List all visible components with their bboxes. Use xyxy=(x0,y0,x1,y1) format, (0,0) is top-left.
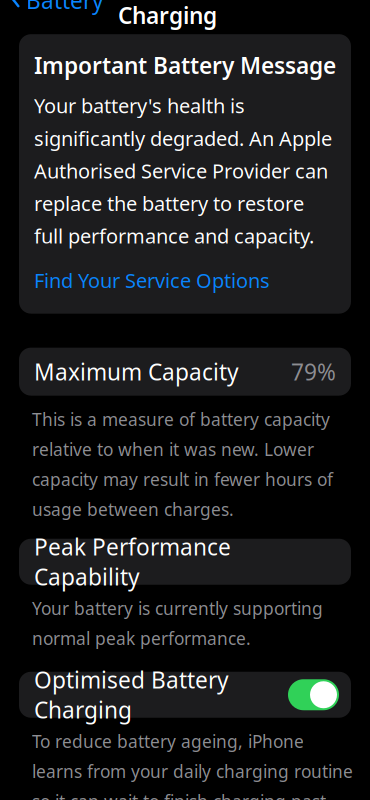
staticText: 79% xyxy=(291,357,336,387)
button[interactable]: Maximum Capacity xyxy=(0,348,351,396)
staticText: Your battery is currently supporting nor… xyxy=(32,597,323,650)
staticText: Important Battery Message xyxy=(34,50,336,80)
staticText: Find Your Service Options xyxy=(34,267,270,294)
button[interactable]: Battery xyxy=(0,0,110,20)
button[interactable]: Find Your Service Options xyxy=(34,249,270,296)
staticText: This is a measure of battery capacity re… xyxy=(32,408,333,521)
staticText: Your battery's health is significantly d… xyxy=(34,92,332,249)
button[interactable]: Peak Performance Capability xyxy=(0,539,351,585)
button[interactable]: Optimised Battery Charging xyxy=(0,672,351,718)
staticText: Optimised Battery Charging xyxy=(34,665,229,725)
staticText: Battery xyxy=(26,0,104,15)
staticText: To reduce battery ageing, iPhone learns … xyxy=(32,730,353,800)
staticText: Battery Health & Charging xyxy=(118,0,300,30)
staticText: Peak Performance Capability xyxy=(34,532,231,592)
staticText: Maximum Capacity xyxy=(34,357,239,387)
